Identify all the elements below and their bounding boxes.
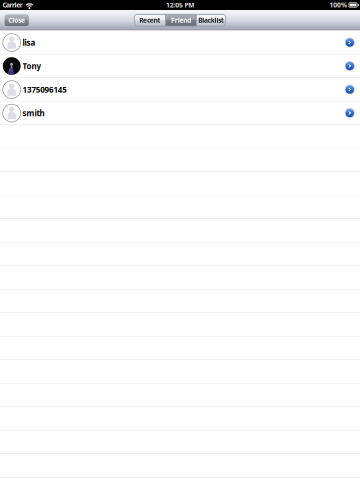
- button[interactable]: Close: [5, 14, 29, 26]
- button[interactable]: Recent: [134, 14, 165, 26]
- staticText: Carrier: [2, 1, 23, 9]
- button[interactable]: Friend: [166, 14, 196, 26]
- staticText: 100%: [329, 1, 347, 9]
- button[interactable]: lisa: [0, 31, 360, 54]
- staticText: 1375096145: [23, 84, 67, 95]
- staticText: Tony: [23, 61, 42, 71]
- button[interactable]: Tony: [0, 55, 360, 77]
- staticText: lisa: [23, 37, 36, 48]
- button[interactable]: 1375096145: [0, 78, 360, 101]
- staticText: 12:05 PM: [166, 1, 194, 9]
- staticText: Blacklist: [198, 16, 224, 25]
- button[interactable]: Blacklist: [197, 14, 225, 26]
- staticText: Recent: [139, 16, 160, 25]
- staticText: Close: [8, 16, 25, 25]
- button[interactable]: smith: [0, 102, 360, 124]
- staticText: smith: [23, 108, 45, 118]
- staticText: Friend: [171, 16, 191, 25]
